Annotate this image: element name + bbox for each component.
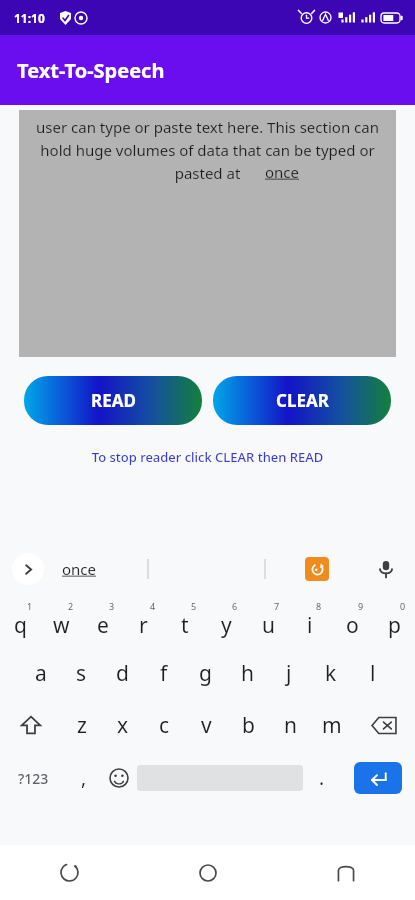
- staticText: b: [242, 711, 255, 740]
- button[interactable]: Back: [0, 845, 139, 900]
- button[interactable]: 6: [205, 595, 247, 647]
- button[interactable]: g: [184, 647, 226, 699]
- staticText: 7: [274, 600, 280, 612]
- staticText: e: [97, 611, 109, 640]
- staticText: 3: [109, 600, 115, 612]
- staticText: 11:10: [14, 10, 45, 26]
- staticText: s: [76, 659, 87, 688]
- button[interactable]: m: [311, 699, 353, 751]
- button[interactable]: 1: [0, 595, 41, 647]
- staticText: r: [139, 611, 148, 640]
- staticText: h: [241, 659, 254, 688]
- button[interactable]: 9: [331, 595, 373, 647]
- button[interactable]: ,: [67, 751, 100, 805]
- button[interactable]: Emoji: [100, 751, 137, 805]
- button[interactable]: 0: [373, 595, 415, 647]
- button[interactable]: Clipboard: [305, 557, 329, 581]
- button[interactable]: Home: [139, 845, 277, 900]
- button[interactable]: j: [268, 647, 310, 699]
- staticText: m: [322, 711, 342, 740]
- button[interactable]: z: [61, 699, 102, 751]
- staticText: c: [159, 711, 170, 740]
- button[interactable]: once: [62, 559, 97, 579]
- button[interactable]: 5: [164, 595, 205, 647]
- staticText: u: [262, 611, 275, 640]
- staticText: ,: [81, 765, 87, 791]
- button[interactable]: Enter: [354, 762, 402, 794]
- button[interactable]: ?123: [0, 751, 67, 805]
- staticText: i: [307, 611, 313, 640]
- staticText: f: [160, 659, 168, 688]
- staticText: .: [319, 765, 325, 791]
- staticText: x: [117, 711, 129, 740]
- staticText: 6: [232, 600, 238, 612]
- button[interactable]: n: [269, 699, 311, 751]
- staticText: 5: [191, 600, 197, 612]
- button[interactable]: f: [143, 647, 184, 699]
- staticText: Text-To-Speech: [17, 57, 165, 84]
- button[interactable]: h: [226, 647, 268, 699]
- button[interactable]: Backspace: [353, 699, 415, 751]
- button[interactable]: user can type or paste text here. This s…: [19, 110, 396, 357]
- button[interactable]: 4: [123, 595, 164, 647]
- button[interactable]: 2: [41, 595, 82, 647]
- button[interactable]: v: [185, 699, 227, 751]
- button[interactable]: l: [352, 647, 394, 699]
- staticText: p: [388, 611, 401, 640]
- button[interactable]: b: [227, 699, 269, 751]
- staticText: j: [286, 659, 292, 688]
- button[interactable]: CLEAR: [213, 376, 391, 425]
- staticText: n: [284, 711, 297, 740]
- staticText: 8: [316, 600, 322, 612]
- staticText: y: [221, 611, 232, 640]
- staticText: 4: [150, 600, 156, 612]
- staticText: once: [62, 559, 97, 579]
- staticText: ?123: [18, 769, 49, 788]
- staticText: 9: [358, 600, 364, 612]
- staticText: l: [370, 659, 376, 688]
- staticText: g: [199, 659, 212, 688]
- staticText: v: [201, 711, 212, 740]
- button[interactable]: .: [303, 751, 340, 805]
- button[interactable]: d: [102, 647, 143, 699]
- staticText: k: [325, 659, 337, 688]
- staticText: READ: [91, 389, 136, 412]
- staticText: 0: [400, 600, 406, 612]
- staticText: To stop reader click CLEAR then READ: [0, 448, 415, 466]
- staticText: d: [116, 659, 129, 688]
- button[interactable]: a: [20, 647, 61, 699]
- button[interactable]: 8: [289, 595, 331, 647]
- button[interactable]: s: [61, 647, 102, 699]
- staticText: a: [35, 659, 47, 688]
- staticText: t: [181, 611, 189, 640]
- staticText: w: [53, 611, 70, 640]
- button[interactable]: Voice input: [373, 556, 399, 582]
- staticText: q: [14, 611, 27, 640]
- button[interactable]: k: [310, 647, 352, 699]
- staticText: once: [265, 162, 300, 182]
- staticText: 2: [68, 600, 74, 612]
- button[interactable]: READ: [24, 376, 202, 425]
- staticText: 1: [27, 600, 33, 612]
- button[interactable]: Shift: [0, 699, 61, 751]
- button[interactable]: Expand suggestions: [12, 553, 44, 585]
- staticText: o: [346, 611, 359, 640]
- button[interactable]: Recent apps: [277, 845, 415, 900]
- button[interactable]: x: [102, 699, 143, 751]
- button[interactable]: c: [143, 699, 185, 751]
- button[interactable]: 7: [247, 595, 289, 647]
- staticText: CLEAR: [276, 389, 329, 412]
- staticText: user can type or paste text here. This s…: [27, 117, 388, 183]
- button[interactable]: 3: [82, 595, 123, 647]
- staticText: z: [77, 711, 87, 740]
